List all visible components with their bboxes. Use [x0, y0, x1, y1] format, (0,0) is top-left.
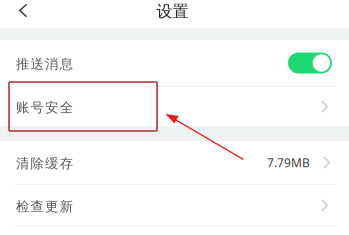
button[interactable]: 推送消息 — [0, 40, 349, 86]
staticText: 账号安全 — [16, 99, 73, 116]
button[interactable]: Back — [0, 0, 40, 28]
button[interactable]: 账号安全 — [0, 87, 349, 126]
staticText: 检查更新 — [16, 198, 73, 215]
staticText: 设置 — [156, 2, 188, 21]
button[interactable]: 清除缓存 — [0, 141, 349, 184]
button[interactable]: 检查更新 — [0, 185, 349, 226]
staticText: 7.79MB — [267, 154, 310, 170]
staticText: 清除缓存 — [16, 155, 73, 172]
staticText: 推送消息 — [16, 56, 73, 72]
